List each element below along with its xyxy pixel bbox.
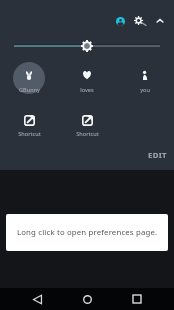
button[interactable]: Shortcut [58,110,116,138]
button[interactable]: Brightness [0,36,174,56]
staticText: Shortcut [76,130,99,138]
button[interactable]: Recents [124,288,150,310]
button[interactable]: Long click to open preferences page. [6,214,168,251]
staticText: you [140,86,150,94]
button[interactable]: loves [58,62,116,102]
button[interactable]: Settings [130,11,150,31]
button[interactable]: Account [110,11,130,31]
staticText: Shortcut [18,130,41,138]
button[interactable]: GBunny [0,62,58,102]
button[interactable]: Home [74,288,100,310]
button[interactable]: Collapse [150,11,170,31]
staticText: Long click to open preferences page. [17,227,158,238]
staticText: loves [80,86,94,94]
button[interactable]: EDIT [137,146,174,165]
staticText: EDIT [148,150,167,161]
button[interactable]: Back [24,288,50,310]
button[interactable]: Shortcut [0,110,58,138]
staticText: GBunny [19,86,40,94]
button[interactable]: you [116,62,174,102]
